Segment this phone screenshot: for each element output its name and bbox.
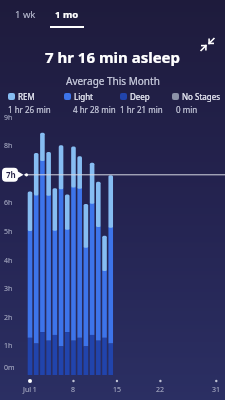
staticText: 1h xyxy=(4,341,13,351)
staticText: 22 xyxy=(156,385,165,395)
staticText: 7h xyxy=(6,169,16,180)
staticText: 4 hr 28 min xyxy=(73,104,116,115)
staticText: Light xyxy=(74,91,94,102)
staticText: 0m xyxy=(4,363,15,373)
staticText: 7 hr 16 min asleep xyxy=(45,47,181,67)
staticText: REM xyxy=(18,91,35,102)
staticText: Jul 1 xyxy=(23,385,37,395)
button[interactable]: 1 mo xyxy=(50,8,84,28)
staticText: 4h xyxy=(4,256,13,266)
staticText: 1 hr 26 min xyxy=(8,104,51,115)
button[interactable]: No Stages xyxy=(172,91,221,115)
staticText: 31 xyxy=(212,385,221,395)
button[interactable]: Deep xyxy=(120,91,163,115)
staticText: 2h xyxy=(4,313,13,323)
staticText: 5h xyxy=(4,227,13,237)
staticText: Average This Month xyxy=(66,74,160,88)
staticText: 9h xyxy=(4,113,13,123)
button[interactable]: 1 wk xyxy=(10,8,40,21)
staticText: 0 min xyxy=(176,104,198,115)
staticText: 3h xyxy=(4,284,13,294)
staticText: 1 wk xyxy=(15,8,36,21)
staticText: 15 xyxy=(113,385,122,395)
staticText: Deep xyxy=(130,91,150,102)
button[interactable] xyxy=(200,37,215,52)
staticText: No Stages xyxy=(182,91,221,102)
staticText: 1 hr 21 min xyxy=(120,104,163,115)
staticText: 6h xyxy=(4,198,13,208)
button[interactable]: Light xyxy=(64,91,116,115)
button[interactable]: REM xyxy=(8,91,51,115)
staticText: 8 xyxy=(71,385,76,395)
staticText: 1 mo xyxy=(55,8,79,21)
staticText: 8h xyxy=(4,141,13,151)
